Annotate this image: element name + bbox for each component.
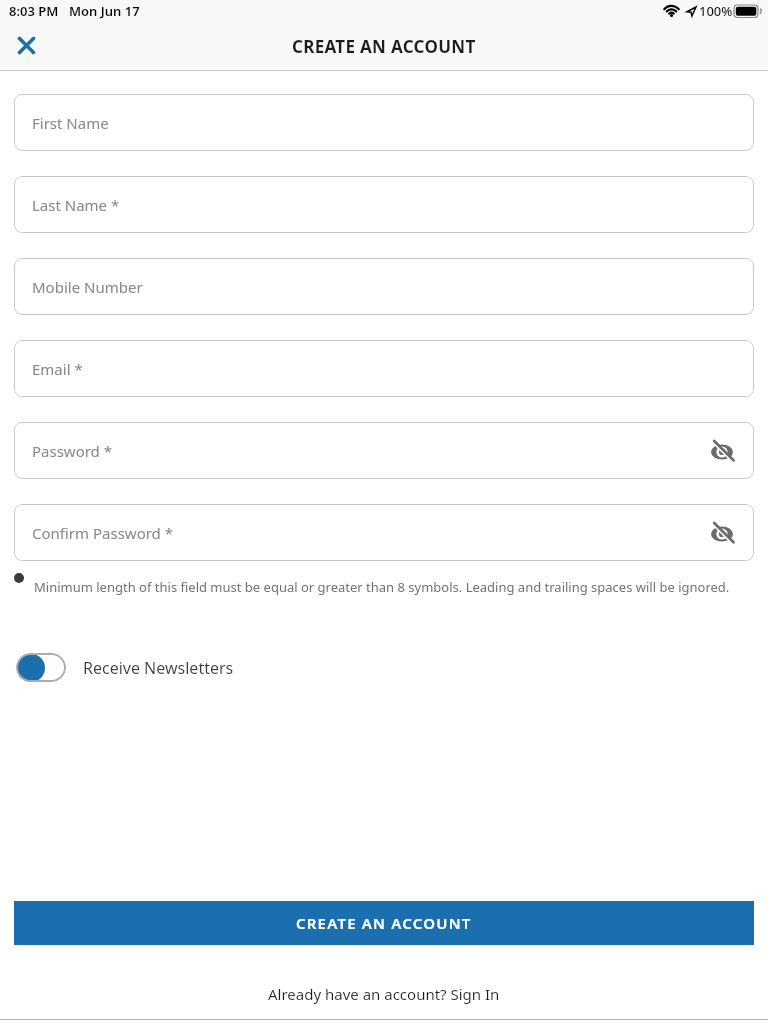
button[interactable]: Confirm Password * <box>14 504 754 561</box>
button[interactable]: Mobile Number <box>14 258 754 315</box>
button[interactable] <box>708 437 736 465</box>
button[interactable]: CREATE AN ACCOUNT <box>14 901 754 945</box>
button[interactable]: Already have an account? Sign In <box>268 984 500 1004</box>
staticText: Receive Newsletters <box>83 657 234 679</box>
staticText: Password * <box>32 441 113 461</box>
button[interactable] <box>708 519 736 547</box>
staticText: Last Name * <box>32 195 120 215</box>
staticText: Minimum length of this field must be equ… <box>34 578 730 596</box>
staticText: Email * <box>32 359 83 379</box>
button[interactable]: Password * <box>14 422 754 479</box>
staticText: First Name <box>32 113 109 133</box>
staticText: 100% <box>699 2 733 20</box>
staticText: Mon Jun 17 <box>69 2 140 20</box>
staticText: Confirm Password * <box>32 523 173 543</box>
button[interactable] <box>10 29 42 61</box>
staticText: CREATE AN ACCOUNT <box>296 913 472 933</box>
button[interactable]: Email * <box>14 340 754 397</box>
staticText: Mobile Number <box>32 277 143 297</box>
button[interactable]: First Name <box>14 94 754 151</box>
staticText: CREATE AN ACCOUNT <box>292 35 476 58</box>
button[interactable]: Receive Newsletters <box>14 653 234 682</box>
staticText: 8:03 PM <box>9 2 59 20</box>
button[interactable]: Last Name * <box>14 176 754 233</box>
